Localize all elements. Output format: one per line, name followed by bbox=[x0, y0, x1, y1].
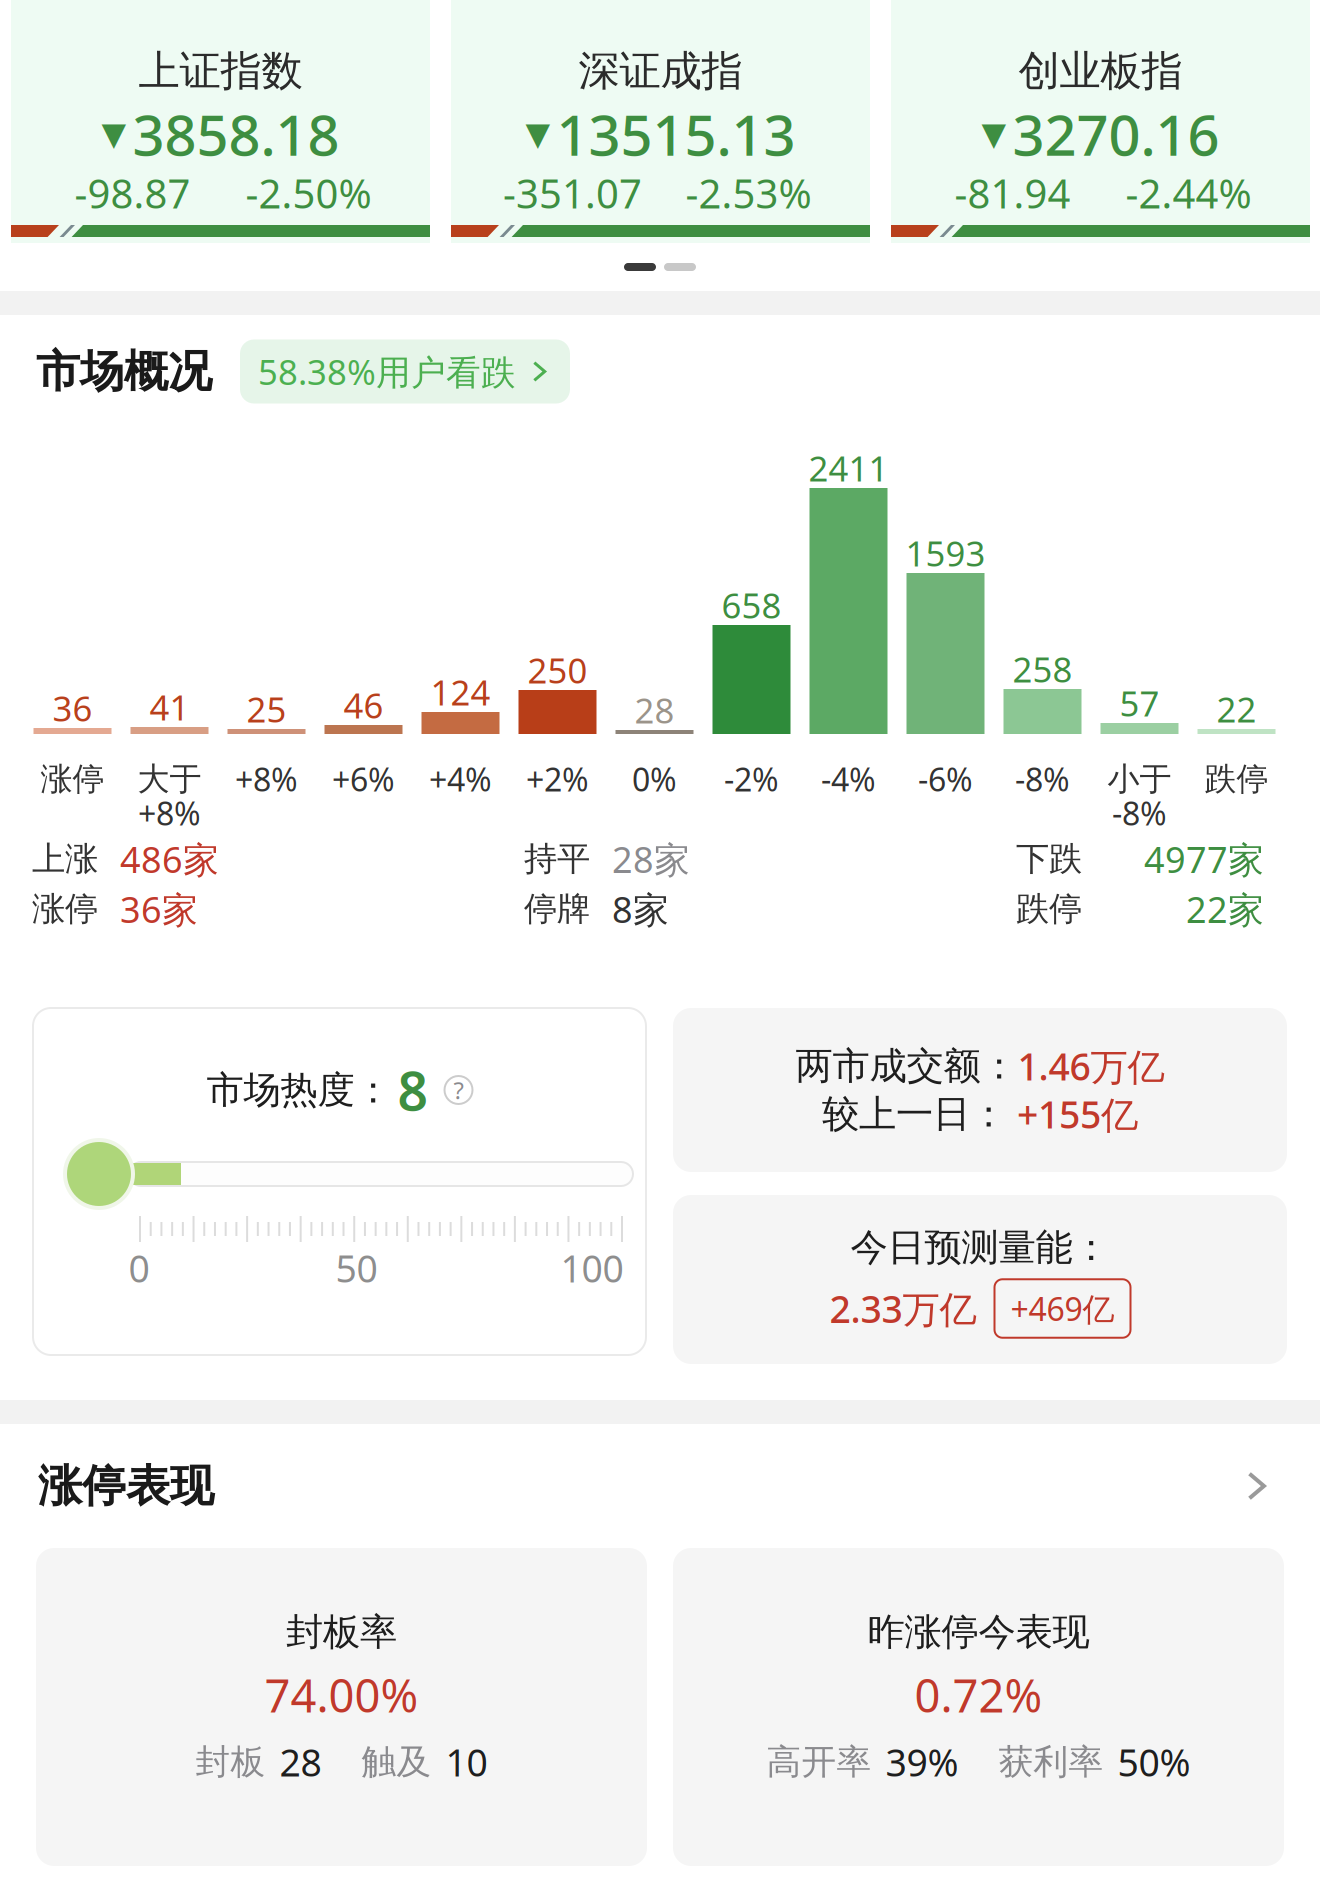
staticText: -8% bbox=[1015, 758, 1070, 800]
button[interactable]: 封板率 bbox=[36, 1548, 647, 1866]
staticText: +155亿 bbox=[1007, 1089, 1138, 1139]
staticText: 昨涨停今表现 bbox=[867, 1609, 1089, 1655]
staticText: 10 bbox=[445, 1737, 487, 1787]
staticText: 46 bbox=[343, 682, 383, 728]
staticText: 高开率 bbox=[766, 1741, 871, 1783]
staticText: 57 bbox=[1119, 680, 1159, 726]
staticText: 两市成交额： bbox=[795, 1043, 1017, 1089]
staticText: +469亿 bbox=[1010, 1287, 1114, 1330]
button[interactable]: 上证指数 bbox=[11, 0, 430, 243]
staticText: 13515.13 bbox=[556, 97, 795, 171]
staticText: 封板 bbox=[195, 1741, 265, 1783]
staticText: ? bbox=[453, 1074, 463, 1106]
staticText: 36家 bbox=[120, 885, 198, 933]
staticText: ▼ bbox=[981, 116, 1006, 152]
staticText: 0 bbox=[128, 1243, 149, 1293]
staticText: ▼ bbox=[101, 116, 126, 152]
staticText: -81.94 bbox=[954, 166, 1070, 219]
staticText: -351.07 bbox=[503, 166, 642, 219]
staticText: 25 bbox=[246, 686, 286, 732]
staticText: 8家 bbox=[612, 885, 669, 933]
staticText: -2.44% bbox=[1125, 166, 1251, 219]
staticText: 658 bbox=[721, 582, 781, 628]
staticText: 258 bbox=[1012, 646, 1072, 692]
staticText: -2.53% bbox=[685, 166, 811, 219]
staticText: 100 bbox=[560, 1243, 623, 1293]
staticText: 28 bbox=[279, 1737, 321, 1787]
staticText: +6% bbox=[332, 758, 395, 800]
button[interactable]: 创业板指 bbox=[891, 0, 1310, 243]
staticText: 4977家 bbox=[1144, 835, 1264, 883]
staticText: 大于 bbox=[137, 759, 201, 799]
staticText: 28家 bbox=[612, 835, 690, 883]
staticText: +8% bbox=[138, 792, 201, 834]
staticText: 小于 bbox=[1107, 759, 1171, 799]
staticText: 39% bbox=[885, 1737, 958, 1787]
button[interactable]: 昨涨停今表现 bbox=[673, 1548, 1284, 1866]
staticText: 跌停 bbox=[1204, 759, 1268, 799]
staticText: 获利率 bbox=[998, 1741, 1103, 1783]
staticText: 22家 bbox=[1186, 885, 1264, 933]
staticText: ▼ bbox=[525, 116, 550, 152]
button[interactable]: 58.38%用户看跌 bbox=[240, 339, 570, 403]
staticText: 50 bbox=[335, 1243, 377, 1293]
staticText: 2.33万亿 bbox=[829, 1284, 976, 1333]
staticText: 市场概况 bbox=[36, 344, 212, 398]
staticText: -2.50% bbox=[245, 166, 371, 219]
staticText: 124 bbox=[430, 669, 490, 715]
staticText: +2% bbox=[526, 758, 589, 800]
staticText: -8% bbox=[1112, 792, 1167, 834]
staticText: 41 bbox=[149, 684, 189, 730]
staticText: 持平 bbox=[524, 838, 590, 879]
staticText: 2411 bbox=[808, 445, 888, 491]
staticText: -6% bbox=[918, 758, 973, 800]
staticText: 1.46万亿 bbox=[1017, 1041, 1164, 1091]
staticText: 较上一日： bbox=[822, 1091, 1007, 1137]
staticText: 8 bbox=[397, 1055, 428, 1125]
staticText: 停牌 bbox=[524, 888, 590, 929]
staticText: 486家 bbox=[120, 835, 219, 883]
staticText: -4% bbox=[821, 758, 876, 800]
staticText: 今日预测量能： bbox=[850, 1225, 1109, 1270]
staticText: 0% bbox=[632, 758, 677, 800]
staticText: 下跌 bbox=[1016, 838, 1082, 879]
staticText: 50% bbox=[1117, 1737, 1190, 1787]
staticText: 涨停表现 bbox=[38, 1459, 214, 1513]
button[interactable]: 更多 bbox=[1230, 1460, 1282, 1512]
staticText: 1593 bbox=[905, 530, 985, 576]
staticText: 22 bbox=[1216, 686, 1256, 732]
button[interactable]: 深证成指 bbox=[451, 0, 870, 243]
staticText: 74.00% bbox=[264, 1665, 418, 1725]
staticText: 涨停 bbox=[32, 888, 98, 929]
staticText: 28 bbox=[634, 687, 674, 733]
staticText: 深证成指 bbox=[578, 46, 742, 96]
staticText: 涨停 bbox=[40, 759, 104, 799]
staticText: 市场热度： bbox=[206, 1067, 391, 1113]
staticText: 上涨 bbox=[32, 838, 98, 879]
staticText: 250 bbox=[527, 647, 587, 693]
staticText: 封板率 bbox=[286, 1609, 397, 1655]
staticText: 创业板指 bbox=[1018, 46, 1182, 96]
staticText: +4% bbox=[429, 758, 492, 800]
staticText: 跌停 bbox=[1016, 888, 1082, 929]
staticText: 0.72% bbox=[914, 1665, 1042, 1725]
staticText: 36 bbox=[52, 685, 92, 731]
staticText: 58.38%用户看跌 bbox=[258, 348, 516, 394]
staticText: +8% bbox=[235, 758, 298, 800]
staticText: 上证指数 bbox=[138, 46, 302, 96]
staticText: -98.87 bbox=[74, 166, 190, 219]
staticText: 3270.16 bbox=[1012, 97, 1219, 171]
staticText: 3858.18 bbox=[132, 97, 339, 171]
staticText: -2% bbox=[724, 758, 779, 800]
staticText: 触及 bbox=[361, 1741, 431, 1783]
